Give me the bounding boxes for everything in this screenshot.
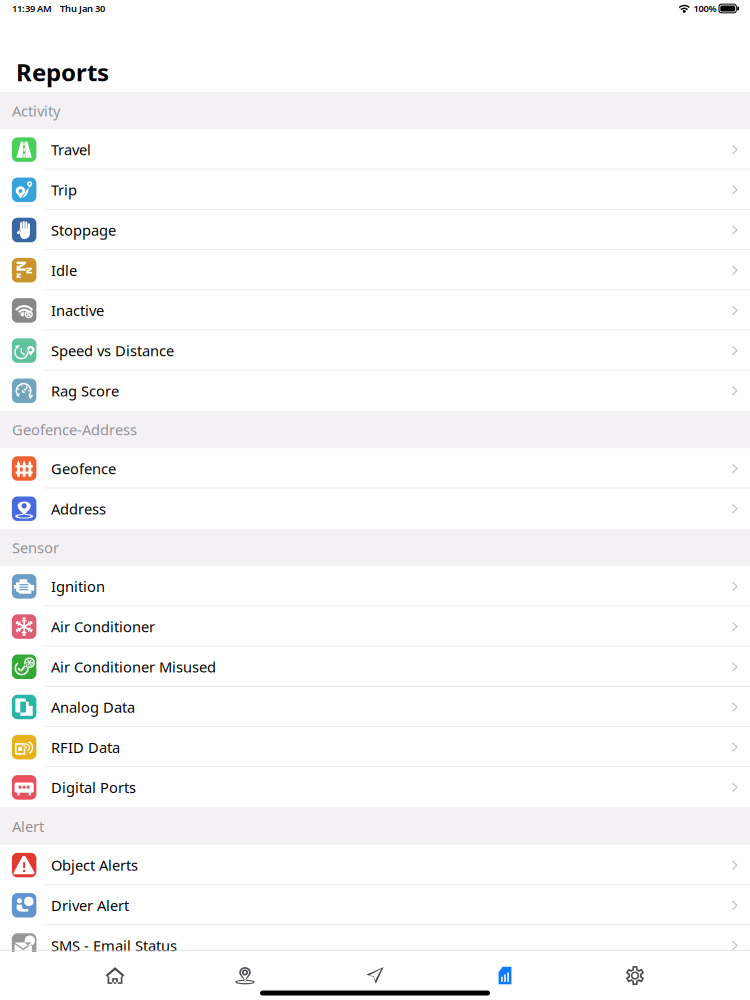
button[interactable]: Address	[0, 489, 750, 529]
staticText: Trip	[51, 180, 77, 200]
button[interactable]: Analog Data	[0, 687, 750, 727]
button[interactable]: RFID Data	[0, 727, 750, 767]
staticText: Rag Score	[51, 381, 119, 401]
staticText: Speed vs Distance	[51, 341, 174, 360]
button[interactable]: Object Alerts	[0, 845, 750, 885]
button[interactable]: Driver Alert	[0, 885, 750, 925]
staticText: Alert	[12, 816, 44, 836]
button[interactable]: Places	[180, 961, 310, 991]
button[interactable]: Geofence	[0, 448, 750, 489]
button[interactable]: Trip	[0, 170, 750, 210]
button[interactable]: Rag Score	[0, 371, 750, 411]
button[interactable]: Reports	[440, 961, 570, 991]
staticText: Air Conditioner	[51, 617, 155, 636]
staticText: Address	[51, 499, 106, 518]
staticText: RFID Data	[51, 737, 120, 757]
button[interactable]: Home	[50, 961, 180, 991]
staticText: Geofence	[51, 459, 116, 478]
button[interactable]: Idle	[0, 250, 750, 290]
staticText: Activity	[12, 101, 60, 120]
button[interactable]: Ignition	[0, 566, 750, 606]
staticText: Analog Data	[51, 697, 135, 717]
button[interactable]: Digital Ports	[0, 767, 750, 807]
staticText: 100%	[693, 2, 716, 15]
button[interactable]: Air Conditioner Misused	[0, 647, 750, 687]
button[interactable]: Inactive	[0, 290, 750, 330]
staticText: Geofence-Address	[12, 420, 137, 439]
staticText: SMS - Email Status	[51, 936, 177, 955]
button[interactable]: Navigate	[310, 961, 440, 991]
staticText: Inactive	[51, 301, 104, 320]
button[interactable]: Speed vs Distance	[0, 330, 750, 371]
button[interactable]: SMS - Email Status	[0, 925, 750, 966]
button[interactable]: Air Conditioner	[0, 606, 750, 647]
staticText: Stoppage	[51, 220, 116, 240]
staticText: Reports	[16, 56, 109, 88]
staticText: Air Conditioner Misused	[51, 657, 216, 677]
button[interactable]: Settings	[570, 961, 700, 991]
staticText: Travel	[51, 140, 91, 159]
button[interactable]: Travel	[0, 129, 750, 170]
staticText: Sensor	[12, 538, 59, 557]
staticText: Ignition	[51, 577, 105, 596]
staticText: Idle	[51, 260, 77, 280]
staticText: Driver Alert	[51, 896, 129, 915]
staticText: Object Alerts	[51, 855, 138, 875]
button[interactable]: Stoppage	[0, 210, 750, 250]
staticText: Thu Jan 30	[60, 2, 105, 15]
staticText: 11:39 AM	[12, 2, 52, 15]
staticText: Digital Ports	[51, 778, 136, 797]
